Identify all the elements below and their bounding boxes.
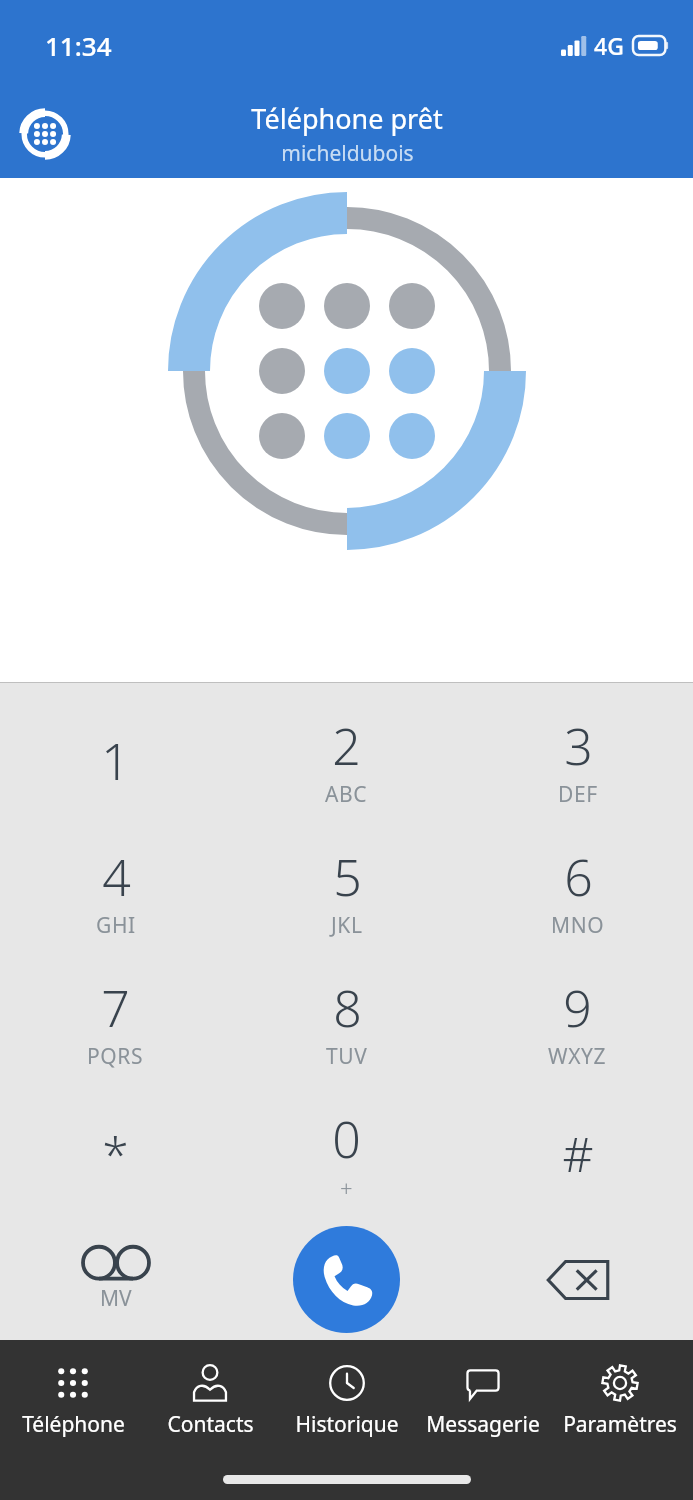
staticText: MNO [551, 911, 605, 940]
button[interactable]: * [0, 1088, 231, 1219]
button[interactable]: Messagerie [419, 1358, 547, 1443]
staticText: 3 [564, 712, 593, 780]
button[interactable]: Effacer [462, 1219, 693, 1340]
staticText: 2 [332, 712, 361, 780]
button[interactable]: Paramètres [556, 1358, 684, 1443]
staticText: 0 [332, 1105, 361, 1173]
button[interactable]: 1 [0, 695, 231, 826]
staticText: 9 [563, 974, 592, 1042]
staticText: 8 [333, 974, 362, 1042]
button[interactable]: Historique [283, 1358, 411, 1443]
staticText: Téléphone [22, 1410, 125, 1439]
button[interactable]: 0 [231, 1088, 462, 1219]
button[interactable]: Appeler [293, 1226, 400, 1333]
staticText: MV [100, 1284, 132, 1313]
button[interactable]: # [462, 1088, 693, 1219]
button[interactable]: 8 [231, 957, 462, 1088]
button[interactable]: 9 [462, 957, 693, 1088]
staticText: 7 [101, 974, 130, 1042]
staticText: * [102, 1121, 129, 1186]
button[interactable]: Messagerie vocale [0, 1219, 231, 1340]
button[interactable]: Menu clavier [16, 105, 74, 163]
staticText: 6 [564, 843, 593, 911]
button[interactable]: 2 [231, 695, 462, 826]
staticText: Messagerie [426, 1410, 540, 1439]
button[interactable]: Contacts [146, 1358, 274, 1443]
button[interactable]: Téléphone [9, 1358, 137, 1443]
staticText: 1 [101, 727, 130, 795]
staticText: Historique [295, 1410, 399, 1439]
button[interactable]: 3 [462, 695, 693, 826]
button[interactable]: 5 [231, 826, 462, 957]
staticText: 4 [102, 843, 131, 911]
staticText: + [340, 1173, 353, 1203]
staticText: PQRS [87, 1042, 144, 1071]
button[interactable]: 4 [0, 826, 231, 957]
staticText: Contacts [167, 1410, 254, 1439]
staticText: TUV [326, 1042, 368, 1071]
staticText: ABC [325, 780, 368, 809]
staticText: JKL [331, 911, 363, 940]
staticText: WXYZ [548, 1042, 607, 1071]
staticText: Paramètres [563, 1410, 677, 1439]
staticText: GHI [96, 911, 136, 940]
staticText: # [562, 1121, 594, 1186]
button[interactable]: 7 [0, 957, 231, 1088]
staticText: 4G [594, 30, 624, 61]
staticText: DEF [558, 780, 598, 809]
button[interactable]: 6 [462, 826, 693, 957]
staticText: 5 [333, 843, 362, 911]
staticText: 11:34 [45, 28, 112, 63]
staticText: micheldubois [281, 139, 414, 168]
staticText: Téléphone prêt [251, 100, 443, 137]
